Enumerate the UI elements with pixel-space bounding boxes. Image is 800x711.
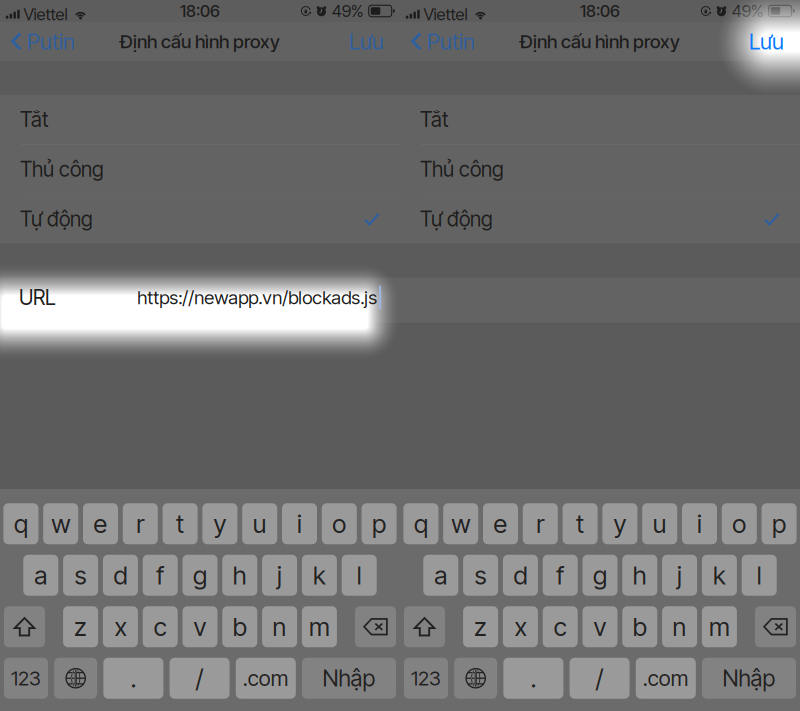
staticText: v	[193, 611, 206, 642]
button[interactable]: r	[123, 503, 158, 544]
button[interactable]: n	[262, 606, 297, 647]
button[interactable]: l	[342, 555, 377, 596]
staticText: Thủ công	[420, 157, 504, 182]
button[interactable]: m	[302, 606, 337, 647]
button[interactable]: 123	[404, 658, 448, 699]
button[interactable]: k	[702, 555, 737, 596]
button[interactable]: l	[742, 555, 777, 596]
button[interactable]: h	[222, 555, 257, 596]
button[interactable]: 123	[4, 658, 48, 699]
button[interactable]: x	[503, 606, 538, 647]
button[interactable]: h	[622, 555, 657, 596]
staticText: Viettel	[23, 4, 67, 24]
button[interactable]: Delete	[355, 606, 396, 647]
button[interactable]: v	[582, 606, 617, 647]
button[interactable]: y	[602, 503, 637, 544]
button[interactable]: f	[143, 555, 178, 596]
button[interactable]: j	[262, 555, 297, 596]
button[interactable]: v	[182, 606, 217, 647]
button[interactable]: Tự động	[0, 195, 400, 244]
staticText: s	[475, 560, 487, 591]
button[interactable]: r	[523, 503, 558, 544]
button[interactable]: p	[362, 503, 397, 544]
button[interactable]: y	[202, 503, 237, 544]
button[interactable]: k	[302, 555, 337, 596]
button[interactable]: u	[642, 503, 677, 544]
button[interactable]: Lưu	[336, 22, 384, 61]
button[interactable]: b	[222, 606, 257, 647]
staticText: h	[633, 560, 647, 591]
button[interactable]: .	[103, 658, 163, 699]
staticText: o	[332, 508, 346, 539]
button[interactable]: Next keyboard	[54, 658, 97, 699]
button[interactable]: Nhập	[302, 658, 396, 699]
button[interactable]: Delete	[755, 606, 796, 647]
button[interactable]: Shift	[4, 606, 45, 647]
button[interactable]: d	[503, 555, 538, 596]
button[interactable]: b	[622, 606, 657, 647]
button[interactable]: Tắt	[0, 95, 400, 144]
staticText: z	[474, 611, 487, 642]
button[interactable]: Thủ công	[0, 145, 400, 194]
button[interactable]: a	[23, 555, 58, 596]
button[interactable]: Thủ công	[400, 145, 800, 194]
button[interactable]: i	[682, 503, 717, 544]
staticText: k	[713, 560, 726, 591]
button[interactable]: Lưu	[736, 22, 784, 61]
staticText: u	[653, 508, 667, 539]
button[interactable]: Tắt	[400, 95, 800, 144]
staticText: y	[613, 508, 626, 539]
staticText: Viettel	[423, 4, 467, 24]
button[interactable]: Putin	[0, 22, 83, 61]
button[interactable]: p	[762, 503, 797, 544]
button[interactable]: w	[43, 503, 78, 544]
button[interactable]: u	[242, 503, 277, 544]
button[interactable]: j	[662, 555, 697, 596]
button[interactable]: .	[503, 658, 563, 699]
button[interactable]: e	[83, 503, 118, 544]
staticText: f	[556, 560, 564, 591]
button[interactable]: o	[722, 503, 757, 544]
button[interactable]: .com	[636, 658, 696, 699]
button[interactable]: i	[282, 503, 317, 544]
staticText: o	[732, 508, 746, 539]
staticText: d	[513, 560, 527, 591]
button[interactable]: /	[170, 658, 230, 699]
button[interactable]: z	[63, 606, 98, 647]
button[interactable]: s	[463, 555, 498, 596]
button[interactable]: o	[322, 503, 357, 544]
button[interactable]: q	[3, 503, 38, 544]
staticText: https://newapp.vn/blockads.js	[137, 286, 377, 309]
button[interactable]: d	[103, 555, 138, 596]
button[interactable]: c	[543, 606, 578, 647]
button[interactable]: q	[403, 503, 438, 544]
button[interactable]: f	[543, 555, 578, 596]
staticText: .	[530, 663, 536, 694]
staticText: a	[434, 560, 447, 591]
button[interactable]: .com	[236, 658, 296, 699]
button[interactable]: g	[182, 555, 217, 596]
button[interactable]: g	[582, 555, 617, 596]
button[interactable]: t	[163, 503, 198, 544]
button[interactable]: /	[570, 658, 630, 699]
staticText: Lưu	[749, 28, 784, 55]
button[interactable]: e	[483, 503, 518, 544]
button[interactable]: Shift	[404, 606, 445, 647]
button[interactable]: Tự động	[400, 195, 800, 244]
button[interactable]: m	[702, 606, 737, 647]
button[interactable]: x	[103, 606, 138, 647]
staticText: n	[273, 611, 287, 642]
button[interactable]: n	[662, 606, 697, 647]
button[interactable]: t	[563, 503, 598, 544]
button[interactable]: Lưu	[736, 22, 784, 61]
button[interactable]: Nhập	[702, 658, 796, 699]
button[interactable]: w	[443, 503, 478, 544]
button[interactable]: Next keyboard	[454, 658, 497, 699]
button[interactable]: Putin	[400, 22, 483, 61]
staticText: Tắt	[20, 107, 49, 132]
button[interactable]: a	[423, 555, 458, 596]
staticText: /	[596, 663, 604, 694]
button[interactable]: c	[143, 606, 178, 647]
button[interactable]: z	[463, 606, 498, 647]
button[interactable]: s	[63, 555, 98, 596]
